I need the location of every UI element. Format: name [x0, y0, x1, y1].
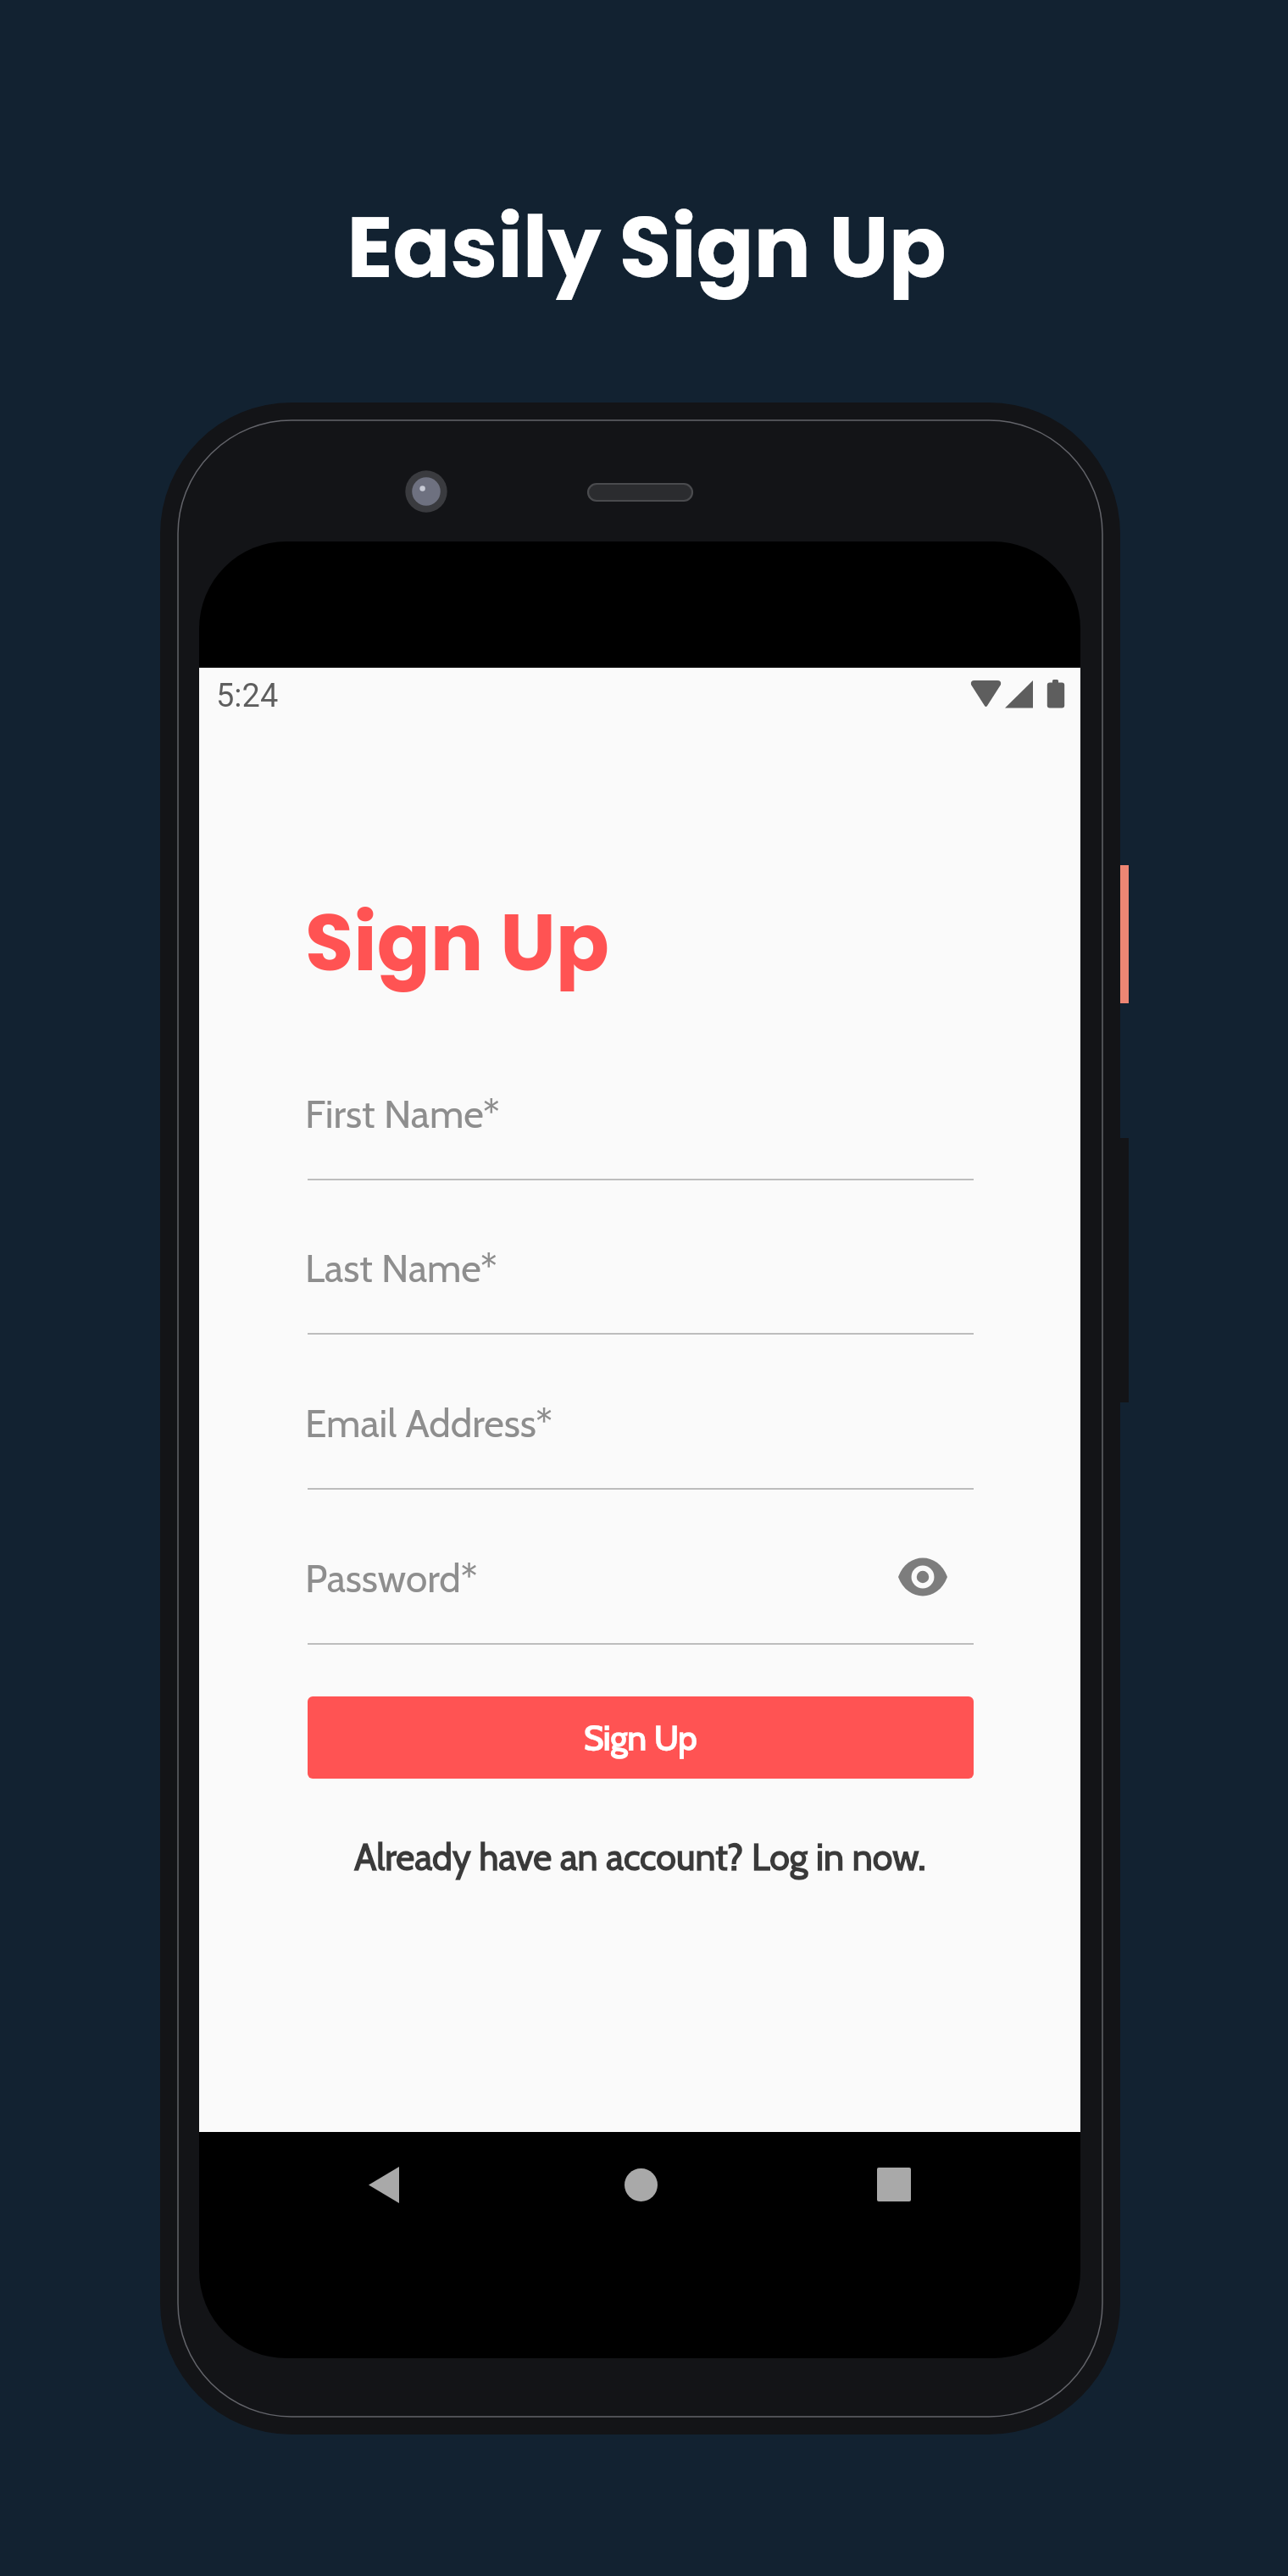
staticText: First Name*: [305, 1091, 500, 1138]
button[interactable]: Show password: [882, 1543, 963, 1611]
button[interactable]: Last Name*: [308, 1240, 974, 1333]
button[interactable]: Back: [337, 2138, 430, 2231]
staticText: Last Name*: [305, 1245, 497, 1292]
button[interactable]: First Name*: [308, 1085, 974, 1179]
button[interactable]: Email Address*: [308, 1395, 974, 1488]
button[interactable]: Password*: [308, 1550, 974, 1643]
staticText: Email Address*: [305, 1400, 552, 1447]
button[interactable]: Recent apps: [847, 2138, 941, 2231]
staticText: Sign Up: [305, 887, 609, 997]
button[interactable]: Already have an account? Log in now.: [199, 1829, 1080, 1885]
button[interactable]: Sign Up: [308, 1696, 974, 1779]
staticText: Sign Up: [584, 1717, 697, 1758]
staticText: 5:24: [216, 677, 279, 715]
staticText: Already have an account? Log in now.: [354, 1835, 926, 1879]
staticText: Easily Sign Up: [347, 188, 947, 307]
staticText: Password*: [305, 1555, 478, 1602]
button[interactable]: Home: [594, 2138, 687, 2231]
